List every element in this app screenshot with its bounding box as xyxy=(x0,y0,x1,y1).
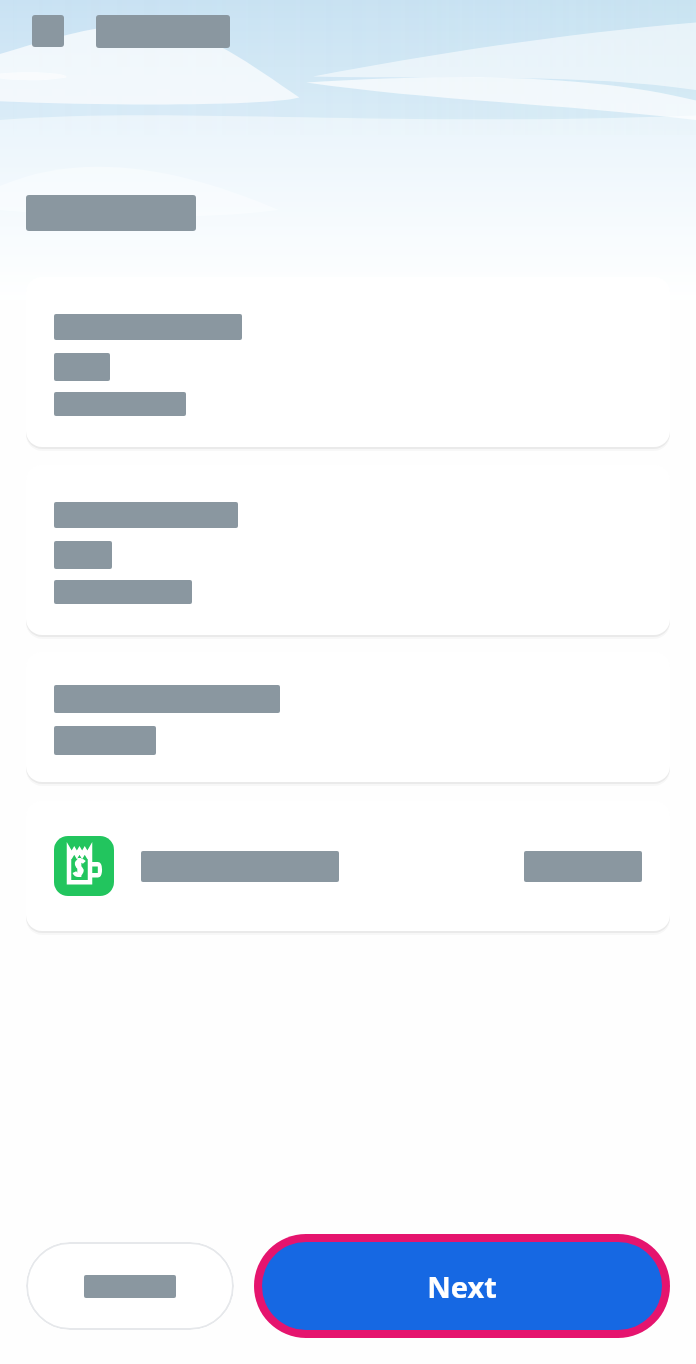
button[interactable]: Next xyxy=(254,1234,670,1338)
button[interactable]: Back xyxy=(26,1242,234,1330)
button[interactable] xyxy=(26,277,670,447)
button[interactable] xyxy=(26,652,670,782)
button[interactable]: Back xyxy=(32,15,64,47)
staticText: Next xyxy=(427,1267,497,1306)
other: Receipt xyxy=(54,836,114,896)
button[interactable] xyxy=(26,465,670,635)
button[interactable]: Receipt xyxy=(26,801,670,931)
